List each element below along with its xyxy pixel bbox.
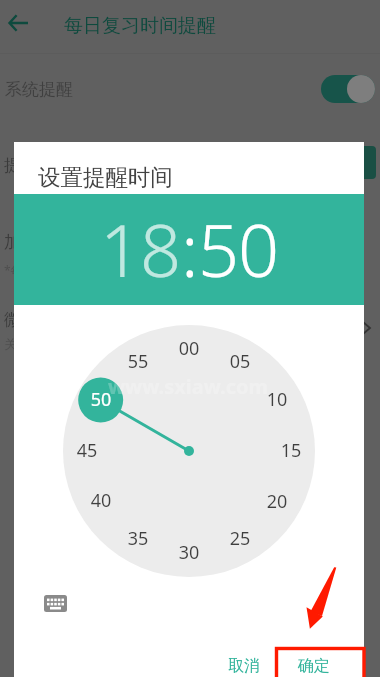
staticText: 35 xyxy=(120,526,156,551)
button[interactable]: Back xyxy=(0,3,38,43)
staticText: : xyxy=(181,200,198,298)
button[interactable]: 加入计划 xyxy=(4,232,72,253)
button[interactable]: 取消 xyxy=(220,646,268,677)
staticText: 25 xyxy=(222,526,258,551)
staticText: 微信提醒 xyxy=(4,309,72,330)
button[interactable]: 50 xyxy=(198,200,279,298)
staticText: www.sxiaw.com xyxy=(108,373,268,400)
staticText: 提醒时间 xyxy=(4,155,72,176)
staticText: 每日复习时间提醒 xyxy=(64,14,216,38)
button[interactable]: 系统提醒 xyxy=(0,54,380,120)
staticText: *每日提醒 xyxy=(4,262,59,278)
staticText: 10 xyxy=(259,387,295,412)
staticText: 40 xyxy=(83,488,119,513)
staticText: 确定 xyxy=(298,656,330,676)
staticText: 15 xyxy=(273,438,309,463)
staticText: 设置提醒时间 xyxy=(38,163,173,191)
button[interactable]: 确定 xyxy=(288,646,340,677)
button[interactable]: 提醒时间 xyxy=(4,155,72,176)
staticText: 30 xyxy=(171,540,207,565)
button[interactable]: Switch to keyboard input xyxy=(33,581,77,625)
staticText: 系统提醒 xyxy=(5,79,73,100)
staticText: 关注公众号 xyxy=(4,336,69,352)
staticText: 取消 xyxy=(228,656,260,676)
staticText: 55 xyxy=(120,349,156,374)
staticText: 05 xyxy=(222,349,258,374)
button[interactable] xyxy=(338,146,376,179)
staticText: 加入计划 xyxy=(4,232,72,253)
staticText: 50 xyxy=(83,387,119,412)
staticText: 00 xyxy=(171,336,207,361)
button[interactable]: 微信提醒 xyxy=(4,309,72,330)
staticText: 45 xyxy=(69,438,105,463)
button[interactable]: 18 xyxy=(100,200,181,298)
staticText: 20 xyxy=(259,489,295,514)
